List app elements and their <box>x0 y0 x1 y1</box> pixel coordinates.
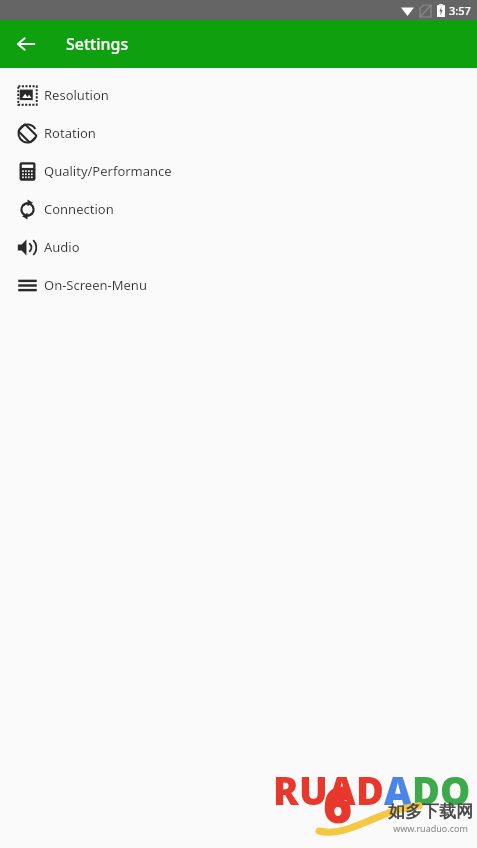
staticText: On-Screen-Menu <box>44 276 147 294</box>
staticText: O <box>440 764 471 816</box>
staticText: Connection <box>44 200 114 218</box>
button[interactable]: Quality/Performance <box>0 152 477 190</box>
button[interactable]: On-Screen-Menu <box>0 266 477 304</box>
button[interactable]: Connection <box>0 190 477 228</box>
staticText: Quality/Performance <box>44 162 172 180</box>
staticText: 3:57 <box>449 3 471 18</box>
staticText: A <box>384 764 412 816</box>
staticText: Audio <box>44 238 80 256</box>
staticText: A <box>328 764 356 816</box>
staticText: 6 <box>323 770 353 838</box>
staticText: R <box>273 764 299 816</box>
staticText: Resolution <box>44 86 109 104</box>
staticText: Rotation <box>44 124 96 142</box>
staticText: www.ruaduo.com <box>393 822 468 834</box>
staticText: D <box>412 764 440 816</box>
button[interactable]: Resolution <box>0 76 477 114</box>
staticText: 如多下载网 <box>388 801 473 822</box>
button[interactable]: Rotation <box>0 114 477 152</box>
button[interactable]: Back <box>6 24 46 64</box>
staticText: Settings <box>66 33 129 55</box>
staticText: D <box>356 764 384 816</box>
button[interactable]: Audio <box>0 228 477 266</box>
staticText: U <box>299 764 328 816</box>
